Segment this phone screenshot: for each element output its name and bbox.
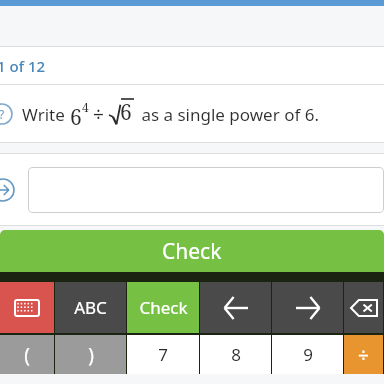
staticText: ABC xyxy=(74,296,107,319)
button[interactable]: Backspace xyxy=(344,282,383,333)
button[interactable]: Right xyxy=(272,282,343,333)
button[interactable]: 7 xyxy=(127,335,199,374)
button[interactable]: Left xyxy=(200,282,271,333)
staticText: 1 of 12 xyxy=(0,56,46,76)
button[interactable]: ( xyxy=(0,335,54,374)
button[interactable]: 8 xyxy=(200,335,271,374)
staticText: Check xyxy=(162,237,222,266)
button[interactable]: Check xyxy=(127,282,199,333)
staticText: 9 xyxy=(303,343,313,366)
staticText: 6 xyxy=(70,103,82,132)
button[interactable]: 1 of 12 xyxy=(0,47,384,84)
staticText: 8 xyxy=(231,343,241,366)
staticText: ? xyxy=(0,106,5,122)
button[interactable]: 9 xyxy=(272,335,343,374)
button[interactable]: Help xyxy=(0,103,13,125)
button[interactable]: ÷ xyxy=(344,335,383,374)
button[interactable]: Keyboard xyxy=(0,282,54,333)
staticText: 6 xyxy=(120,98,132,127)
staticText: ÷ xyxy=(358,342,369,368)
button[interactable]: Enter answer xyxy=(0,178,15,202)
staticText: 4 xyxy=(82,99,89,115)
staticText: 7 xyxy=(158,343,168,366)
staticText: as a single power of 6. xyxy=(137,103,319,126)
staticText: ( xyxy=(24,342,30,368)
button[interactable]: ) xyxy=(55,335,126,374)
button[interactable]: ABC xyxy=(55,282,126,333)
staticText: Write xyxy=(22,103,70,126)
button[interactable]: Check xyxy=(0,230,384,272)
button[interactable] xyxy=(28,167,384,213)
staticText: Check xyxy=(139,296,188,319)
staticText: ) xyxy=(88,342,94,368)
staticText: ÷ xyxy=(93,101,104,127)
